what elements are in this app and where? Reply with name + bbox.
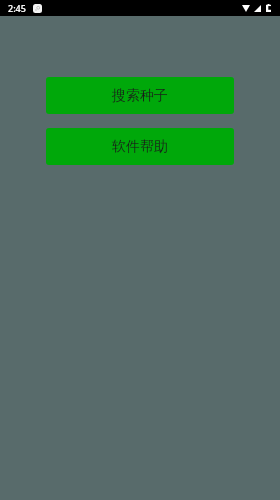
button[interactable]: 搜索种子 — [46, 77, 234, 114]
staticText: 搜索种子 — [112, 87, 168, 105]
other: Mobile signal — [254, 5, 261, 12]
button[interactable]: 软件帮助 — [46, 128, 234, 165]
other: Battery — [266, 4, 271, 12]
staticText: 2:45 — [8, 2, 26, 14]
staticText: 软件帮助 — [112, 138, 168, 156]
other: Wi-Fi signal — [242, 5, 250, 12]
